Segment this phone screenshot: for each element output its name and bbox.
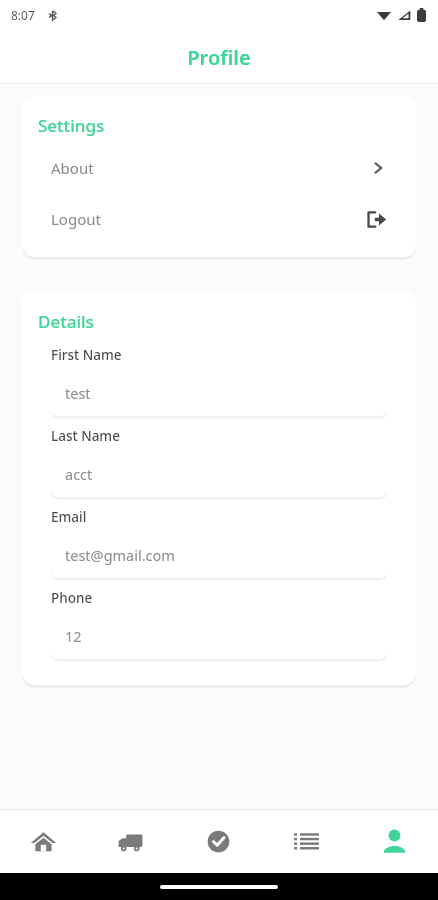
staticText: test (65, 383, 91, 403)
staticText: Settings (38, 114, 105, 137)
button[interactable]: test (51, 370, 387, 416)
staticText: Phone (51, 589, 93, 607)
staticText: Logout (51, 209, 101, 229)
button[interactable]: acct (51, 451, 387, 497)
staticText: acct (65, 464, 93, 484)
button[interactable]: Home (0, 810, 87, 873)
button[interactable]: Deliveries (87, 810, 174, 873)
other: Logout (366, 209, 387, 230)
staticText: Profile (187, 44, 251, 71)
button[interactable]: test@gmail.com (51, 532, 387, 578)
staticText: Details (38, 310, 94, 333)
button[interactable]: Completed (174, 810, 262, 873)
staticText: 8:07 (11, 7, 35, 23)
button[interactable]: About (22, 149, 416, 187)
button[interactable]: 12 (51, 613, 387, 659)
staticText: 12 (65, 626, 82, 646)
staticText: Last Name (51, 427, 120, 445)
staticText: Email (51, 508, 87, 526)
staticText: First Name (51, 346, 122, 364)
button[interactable]: Logout (22, 200, 416, 238)
staticText: test@gmail.com (65, 545, 175, 565)
button[interactable]: List (262, 810, 350, 873)
button[interactable]: Profile (350, 810, 438, 873)
staticText: About (51, 158, 94, 178)
